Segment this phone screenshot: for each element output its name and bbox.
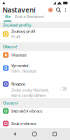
button[interactable]: Hlasitost (0, 51, 70, 59)
button[interactable]: Account (47, 6, 54, 14)
staticText: Utlm. hlasitost (11, 68, 36, 73)
staticText: Zvuk a Nastavení (14, 14, 43, 19)
staticText: Zvuk a vibrace (11, 121, 36, 126)
button[interactable]: Recents (50, 129, 60, 139)
staticText: Vše (4, 14, 10, 19)
button[interactable]: Zvuk a Nastavení (14, 14, 43, 21)
button[interactable]: More options (63, 6, 68, 14)
button[interactable]: Zvukový profil (0, 28, 70, 42)
staticText: Zvolte zvuky hlasitosti, které zaznějí b… (11, 87, 49, 108)
staticText: Ostatní (3, 100, 18, 106)
button[interactable]: Interakční vibrace (0, 108, 70, 114)
staticText: Interakční vibrace (11, 108, 42, 114)
button[interactable]: Back (10, 129, 19, 139)
staticText: Vyrovnání (11, 63, 28, 68)
button[interactable]: Home (29, 129, 39, 139)
button[interactable]: Vyrovnání (0, 59, 70, 76)
staticText: Nastavení (2, 6, 35, 14)
staticText: Obecné (3, 44, 17, 49)
staticText: Zvukový profil (11, 29, 35, 34)
button[interactable]: Search (55, 6, 62, 14)
staticText: Zvukové profily (3, 22, 31, 28)
staticText: Hlasitost (11, 52, 26, 58)
button[interactable]: Ringtone (0, 76, 70, 98)
button[interactable]: Vše (2, 14, 12, 21)
staticText: Ringtone (11, 81, 25, 86)
button[interactable]: Zvuk a vibrace (0, 114, 70, 128)
staticText: Profil (11, 34, 20, 39)
